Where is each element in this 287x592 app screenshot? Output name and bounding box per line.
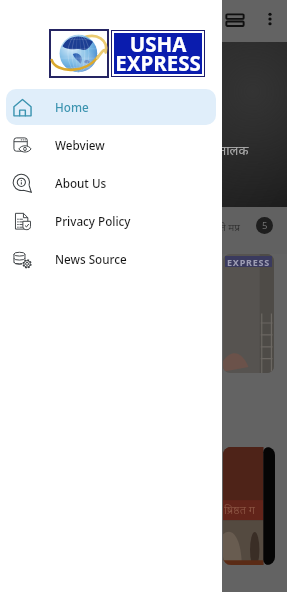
staticText: USHA EXPRESS (115, 30, 201, 71)
button[interactable]: About Us (6, 165, 216, 201)
staticText: News Source (55, 251, 127, 267)
staticText: Privacy Policy (55, 213, 131, 229)
staticText: Home (55, 99, 89, 115)
staticText: ष्रिष्ठत ग (224, 502, 256, 517)
button[interactable]: Webview (6, 127, 216, 163)
staticText: About Us (55, 175, 107, 191)
staticText: नालक (219, 141, 249, 159)
staticText: ते मप्र (220, 220, 240, 234)
button[interactable]: More options (263, 12, 277, 26)
staticText: EXPRESS (227, 256, 271, 267)
staticText: Webview (55, 137, 105, 153)
staticText: 5 (262, 219, 268, 232)
button[interactable]: Toggle layout (226, 11, 244, 29)
button[interactable]: Privacy Policy (6, 203, 216, 239)
button[interactable]: News Source (6, 241, 216, 277)
button[interactable]: Home (6, 89, 216, 125)
